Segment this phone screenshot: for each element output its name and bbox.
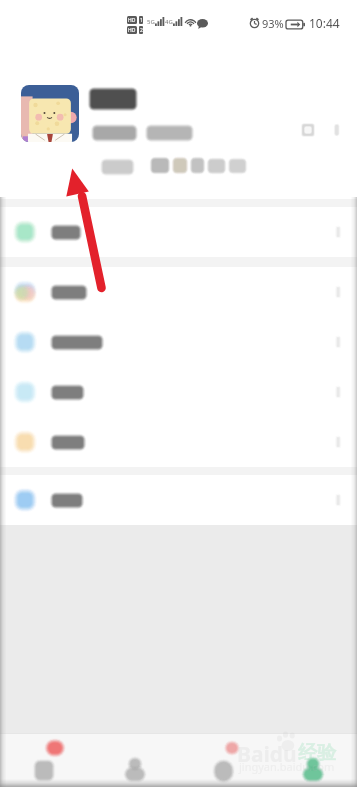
staticText: HD [128, 17, 136, 24]
staticText: jingyan.baidu.com [239, 759, 335, 774]
button[interactable]: More [330, 123, 344, 137]
button[interactable] [0, 475, 357, 525]
staticText: 93% [262, 16, 284, 31]
button[interactable] [0, 207, 357, 257]
button[interactable]: QR code [0, 47, 357, 199]
staticText: 10:44 [309, 15, 340, 31]
button[interactable] [0, 367, 357, 417]
staticText: Baidu [237, 740, 297, 769]
staticText: 1 [140, 17, 143, 24]
button[interactable] [0, 417, 357, 467]
staticText: 2 [140, 27, 143, 34]
staticText: 4G [165, 18, 173, 26]
button[interactable]: Contacts [90, 734, 179, 787]
button[interactable]: Me [268, 734, 357, 787]
staticText: 5G [147, 18, 155, 26]
button[interactable] [0, 317, 357, 367]
button[interactable]: QR code [301, 123, 315, 137]
button[interactable] [0, 267, 357, 317]
button[interactable]: Discover [179, 734, 268, 787]
button[interactable]: Chats [0, 734, 90, 787]
staticText: HD [128, 27, 136, 34]
staticText: 经验 [298, 741, 336, 765]
